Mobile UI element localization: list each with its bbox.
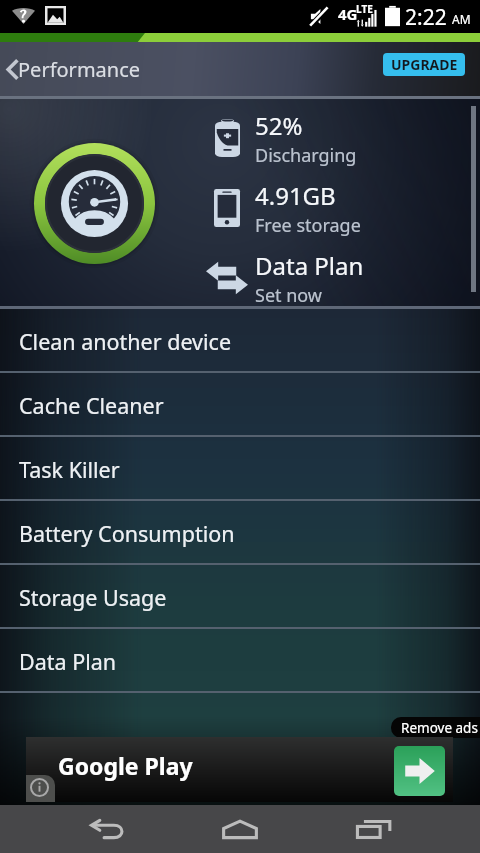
button[interactable]: Battery Consumption — [0, 501, 480, 565]
button[interactable]: Back — [60, 805, 154, 853]
staticText: Battery Consumption — [19, 519, 235, 548]
button[interactable]: Cache Cleaner — [0, 373, 480, 437]
staticText: 4.91GB — [255, 179, 336, 212]
button[interactable]: 4.91GB — [201, 173, 361, 243]
button[interactable]: Data Plan — [0, 629, 480, 693]
button[interactable]: 52% — [201, 103, 357, 173]
staticText: LTE — [356, 2, 373, 16]
staticText: UPGRADE — [391, 55, 458, 74]
staticText: Discharging — [255, 143, 357, 168]
button[interactable]: Recent apps — [327, 805, 421, 853]
button[interactable]: UPGRADE — [383, 53, 465, 76]
staticText: AM — [452, 11, 471, 27]
staticText: Storage Usage — [19, 583, 167, 612]
staticText: Performance — [18, 56, 141, 83]
staticText: 4G — [338, 4, 358, 24]
staticText: Google Play — [58, 750, 193, 781]
button[interactable]: Performance — [0, 42, 480, 96]
button[interactable]: Advertisement info — [26, 775, 55, 802]
button[interactable]: Data Plan — [201, 243, 364, 313]
button[interactable]: Remove ads — [391, 717, 480, 738]
button[interactable]: Task Killer — [0, 437, 480, 501]
staticText: Clean another device — [19, 327, 232, 356]
staticText: 2:22 — [405, 3, 447, 32]
staticText: Data Plan — [255, 249, 364, 282]
staticText: Set now — [255, 283, 323, 308]
staticText: 52% — [255, 109, 303, 142]
staticText: Remove ads — [401, 719, 478, 737]
staticText: Free storage — [255, 213, 361, 238]
button[interactable]: Home — [193, 805, 287, 853]
button[interactable]: Storage Usage — [0, 565, 480, 629]
staticText: Task Killer — [19, 455, 120, 484]
staticText: Cache Cleaner — [19, 391, 164, 420]
staticText: Data Plan — [19, 647, 117, 676]
button[interactable]: Open advert — [394, 746, 445, 796]
button[interactable]: Clean another device — [0, 309, 480, 373]
button[interactable]: Google Play — [26, 737, 453, 802]
